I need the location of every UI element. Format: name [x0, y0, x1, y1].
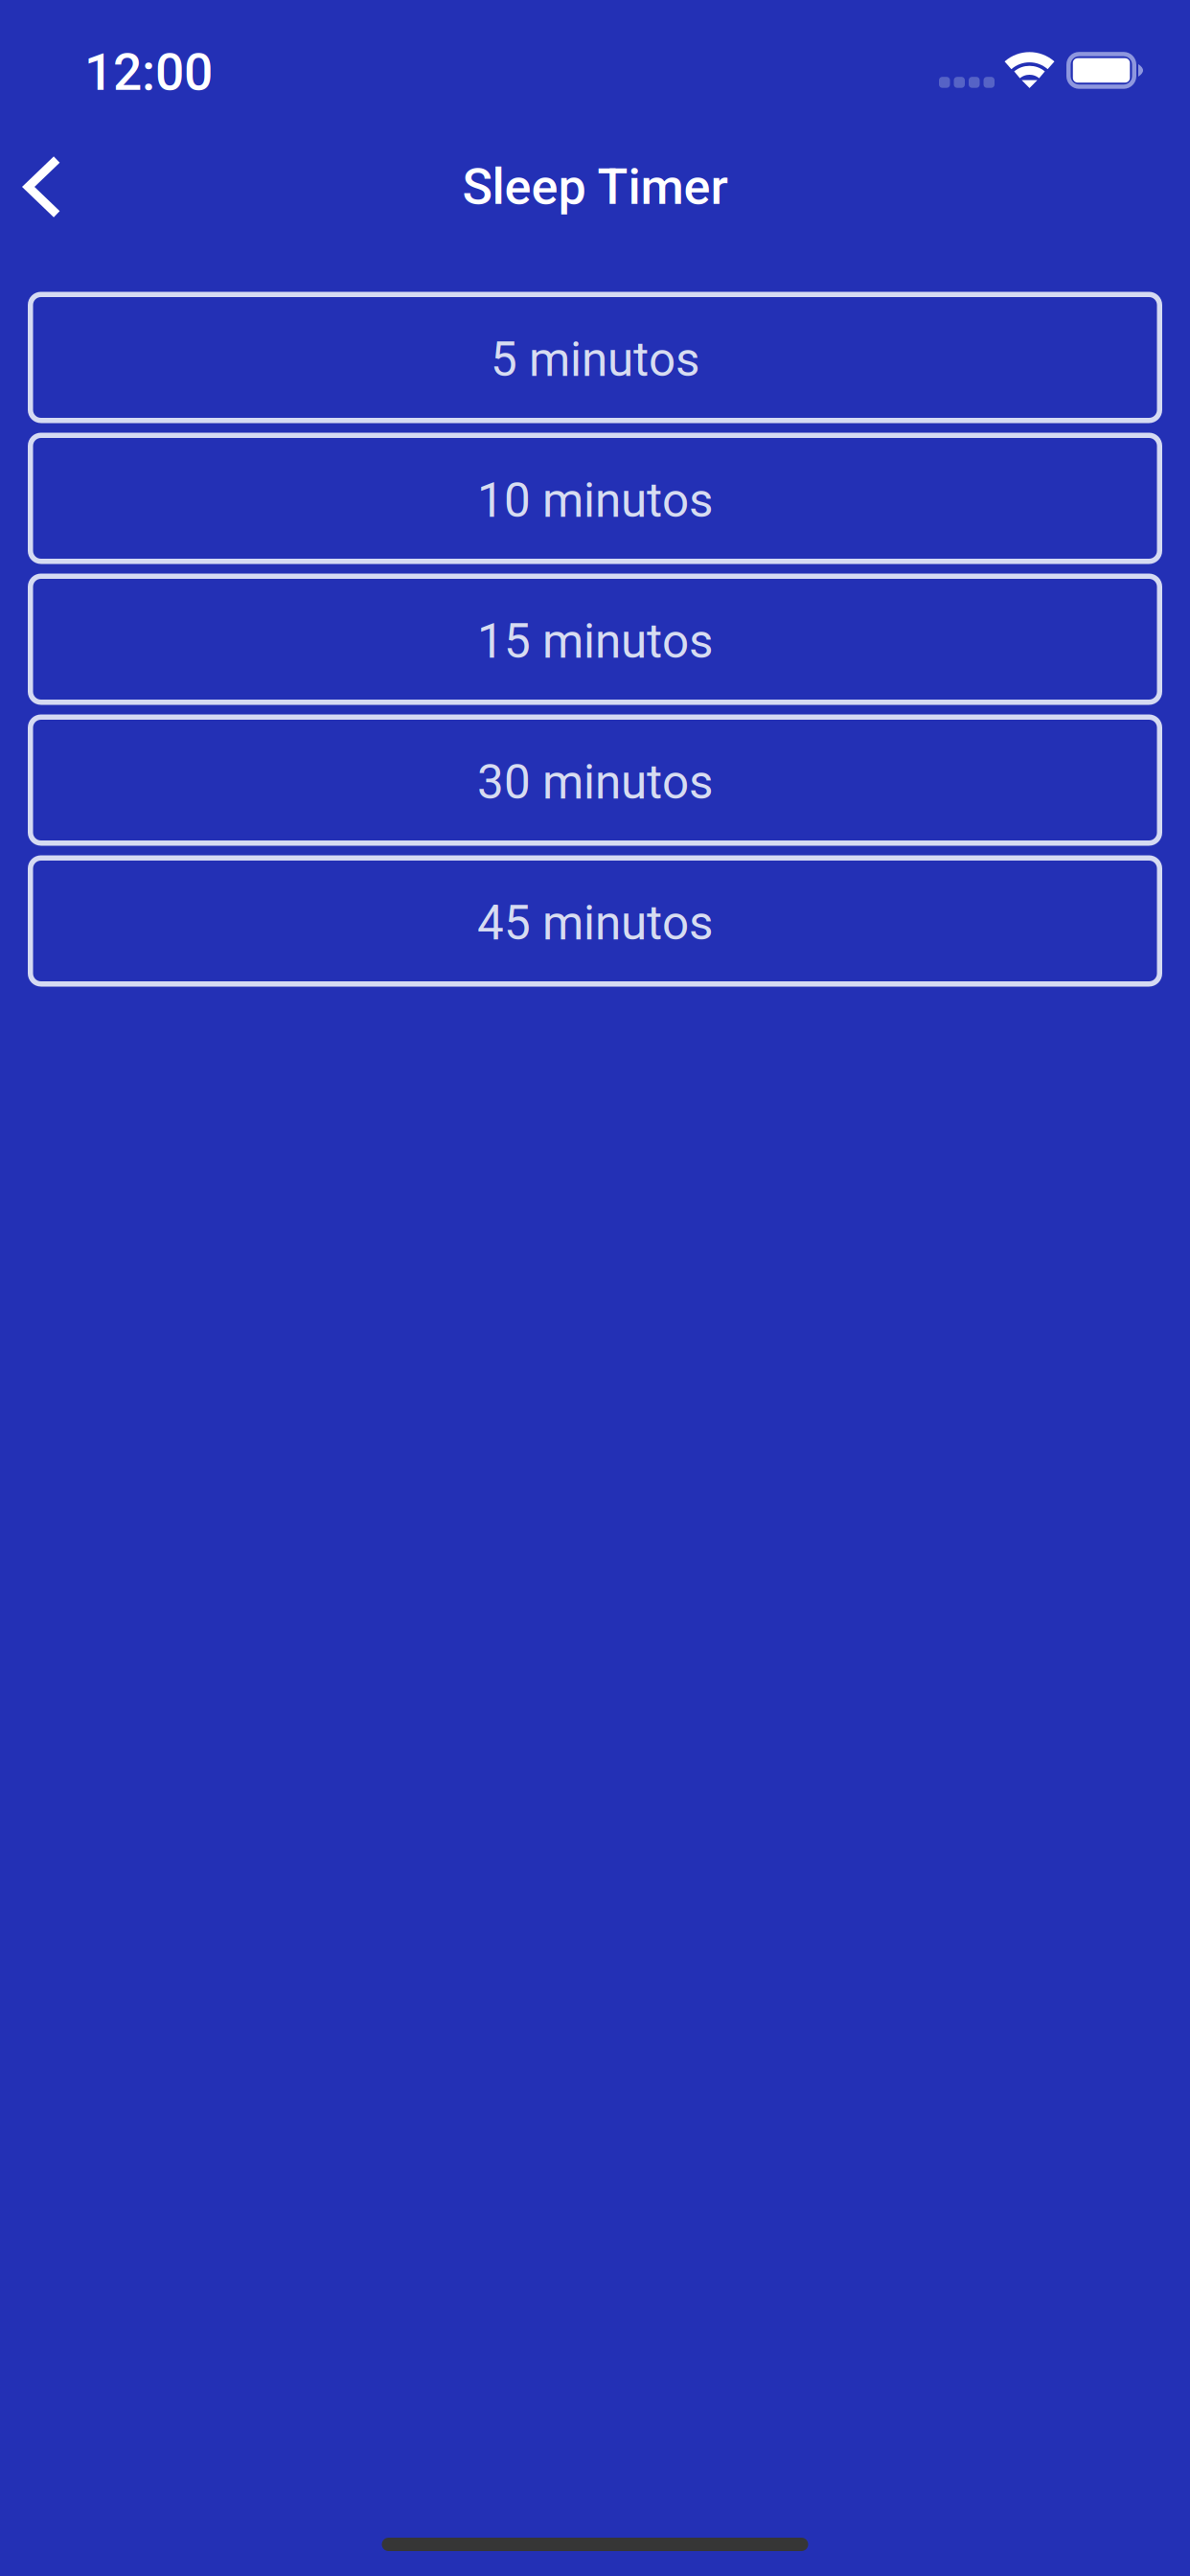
staticText: Sleep Timer	[462, 158, 728, 216]
button[interactable]: 15 minutos	[28, 574, 1162, 705]
button[interactable]: 5 minutos	[28, 292, 1162, 423]
staticText: 5 minutos	[491, 332, 699, 387]
staticText: 45 minutos	[477, 896, 713, 951]
button[interactable]: 45 minutos	[28, 855, 1162, 987]
staticText: 12:00	[84, 42, 213, 102]
staticText: 30 minutos	[477, 755, 713, 810]
staticText: 15 minutos	[477, 614, 713, 669]
staticText: 10 minutos	[477, 473, 713, 528]
button[interactable]: 10 minutos	[28, 433, 1162, 564]
button[interactable]: Back	[0, 131, 88, 239]
button[interactable]: 30 minutos	[28, 714, 1162, 846]
